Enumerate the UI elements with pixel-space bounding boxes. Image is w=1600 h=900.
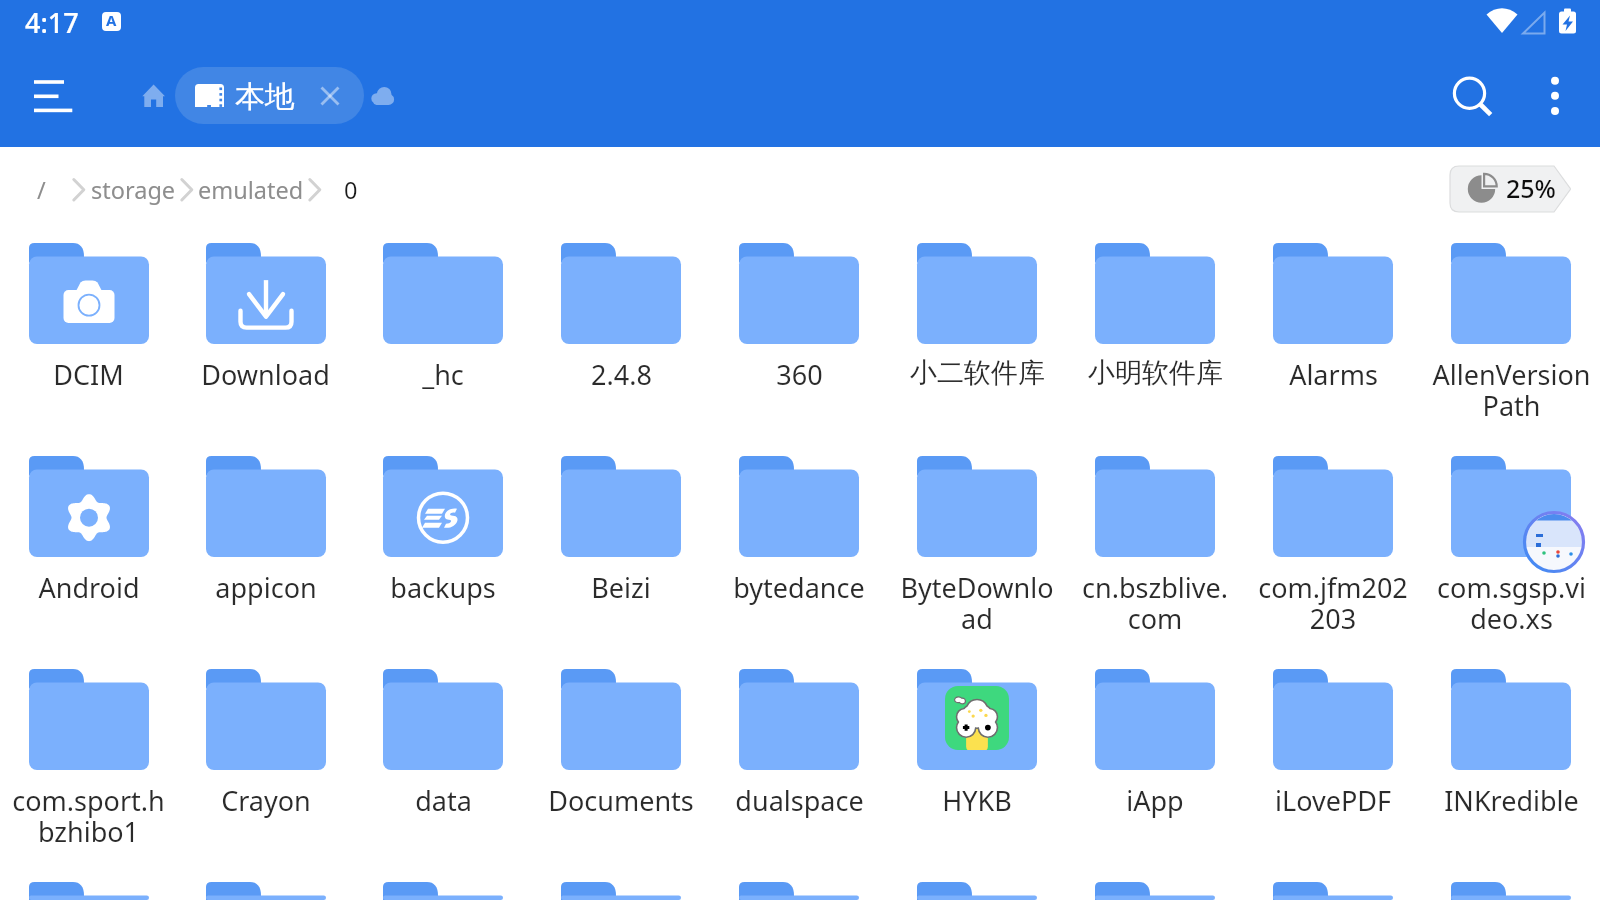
button[interactable]: ByteDownlo ad bbox=[888, 442, 1066, 655]
button[interactable]: com.jfm202 203 bbox=[1244, 442, 1422, 655]
staticText: iLovePDF bbox=[1275, 782, 1391, 819]
staticText: AllenVersion Path bbox=[1432, 356, 1591, 424]
button[interactable] bbox=[888, 868, 1066, 900]
button[interactable]: _hc bbox=[354, 229, 532, 442]
staticText: com.sport.h bzhibo1 bbox=[12, 782, 165, 850]
staticText: Alarms bbox=[1289, 356, 1378, 393]
staticText: 小二软件库 bbox=[910, 356, 1045, 390]
button[interactable]: Cloud storage bbox=[370, 86, 395, 106]
button[interactable]: Alarms bbox=[1244, 229, 1422, 442]
button[interactable]: com.sgsp.vi deo.xs bbox=[1422, 442, 1600, 655]
staticText: 360 bbox=[776, 356, 823, 393]
staticText: ByteDownlo ad bbox=[900, 569, 1054, 637]
button[interactable] bbox=[710, 868, 888, 900]
button[interactable] bbox=[354, 868, 532, 900]
staticText: cn.bszblive. com bbox=[1082, 569, 1228, 637]
button[interactable]: More options bbox=[1535, 68, 1575, 116]
button[interactable]: 2.4.8 bbox=[532, 229, 710, 442]
staticText: 本地 bbox=[235, 78, 295, 116]
button[interactable]: 本地 bbox=[175, 67, 364, 124]
button[interactable] bbox=[0, 868, 177, 900]
staticText: Android bbox=[38, 569, 140, 606]
staticText: 小明软件库 bbox=[1088, 356, 1223, 390]
staticText: HYKB bbox=[942, 782, 1012, 819]
staticText: 4:17 bbox=[25, 4, 79, 41]
button[interactable] bbox=[1066, 868, 1244, 900]
staticText: Crayon bbox=[221, 782, 311, 819]
button[interactable]: storage bbox=[91, 174, 176, 206]
staticText: Beizi bbox=[591, 569, 651, 606]
button[interactable]: Menu bbox=[30, 74, 78, 118]
button[interactable]: Floating window bbox=[1523, 511, 1585, 573]
other: Close bbox=[317, 83, 343, 109]
staticText: Documents bbox=[548, 782, 694, 819]
button[interactable]: AllenVersion Path bbox=[1422, 229, 1600, 442]
button[interactable] bbox=[532, 868, 710, 900]
button[interactable]: bytedance bbox=[710, 442, 888, 655]
button[interactable]: 小二软件库 bbox=[888, 229, 1066, 442]
button[interactable]: INKredible bbox=[1422, 655, 1600, 868]
button[interactable]: data bbox=[354, 655, 532, 868]
button[interactable]: Download bbox=[177, 229, 354, 442]
button[interactable]: Beizi bbox=[532, 442, 710, 655]
button[interactable]: backups bbox=[354, 442, 532, 655]
staticText: com.jfm202 203 bbox=[1258, 569, 1408, 637]
button[interactable]: iLovePDF bbox=[1244, 655, 1422, 868]
button[interactable]: Search bbox=[1448, 72, 1496, 120]
button[interactable]: com.sport.h bzhibo1 bbox=[0, 655, 177, 868]
button[interactable]: 360 bbox=[710, 229, 888, 442]
button[interactable]: Android bbox=[0, 442, 177, 655]
staticText: 2.4.8 bbox=[591, 356, 652, 393]
staticText: dualspace bbox=[735, 782, 864, 819]
staticText: data bbox=[415, 782, 472, 819]
staticText: bytedance bbox=[733, 569, 865, 606]
button[interactable] bbox=[177, 868, 354, 900]
button[interactable]: cn.bszblive. com bbox=[1066, 442, 1244, 655]
staticText: iApp bbox=[1126, 782, 1184, 819]
button[interactable] bbox=[1422, 868, 1600, 900]
button[interactable]: Documents bbox=[532, 655, 710, 868]
staticText: _hc bbox=[422, 356, 464, 393]
button[interactable]: / bbox=[37, 174, 46, 206]
button[interactable]: Home bbox=[142, 84, 166, 108]
button[interactable]: emulated bbox=[198, 174, 304, 206]
button[interactable]: dualspace bbox=[710, 655, 888, 868]
staticText: backups bbox=[390, 569, 496, 606]
staticText: appicon bbox=[215, 569, 317, 606]
button[interactable]: iApp bbox=[1066, 655, 1244, 868]
staticText: Download bbox=[201, 356, 330, 393]
button[interactable]: 小明软件库 bbox=[1066, 229, 1244, 442]
button[interactable]: appicon bbox=[177, 442, 354, 655]
button[interactable] bbox=[1244, 868, 1422, 900]
staticText: DCIM bbox=[53, 356, 124, 393]
staticText: A bbox=[106, 12, 117, 29]
button[interactable]: Crayon bbox=[177, 655, 354, 868]
button[interactable]: 25% bbox=[1450, 166, 1571, 212]
button[interactable]: DCIM bbox=[0, 229, 177, 442]
button[interactable]: HYKB bbox=[888, 655, 1066, 868]
staticText: INKredible bbox=[1444, 782, 1579, 819]
button[interactable]: 0 bbox=[344, 174, 358, 206]
staticText: 25% bbox=[1506, 171, 1556, 205]
staticText: com.sgsp.vi deo.xs bbox=[1437, 569, 1586, 637]
